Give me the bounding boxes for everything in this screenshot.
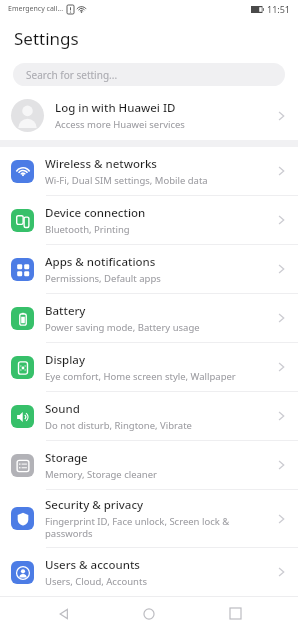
- staticText: Access more Huawei services: [55, 118, 185, 131]
- button[interactable]: Back: [42, 597, 86, 630]
- button[interactable]: Storage: [0, 441, 298, 489]
- staticText: Wireless & networks: [45, 156, 157, 172]
- staticText: Display: [45, 352, 85, 368]
- button[interactable]: Home: [127, 597, 171, 630]
- button[interactable]: Search for setting...: [13, 63, 285, 86]
- button[interactable]: Recent apps: [213, 597, 257, 630]
- staticText: Apps & notifications: [45, 254, 156, 270]
- staticText: Permissions, Default apps: [45, 272, 161, 285]
- staticText: Eye comfort, Home screen style, Wallpape…: [45, 370, 236, 383]
- staticText: Memory, Storage cleaner: [45, 468, 157, 481]
- button[interactable]: Log in with Huawei ID: [0, 91, 298, 140]
- button[interactable]: Device connection: [0, 196, 298, 244]
- staticText: Do not disturb, Ringtone, Vibrate: [45, 419, 192, 432]
- staticText: Security & privacy: [45, 497, 144, 513]
- staticText: Power saving mode, Battery usage: [45, 321, 200, 334]
- button[interactable]: Wireless & networks: [0, 147, 298, 195]
- button[interactable]: Sound: [0, 392, 298, 440]
- staticText: Emergency call...: [8, 4, 64, 14]
- staticText: Bluetooth, Printing: [45, 223, 130, 236]
- staticText: Storage: [45, 450, 88, 466]
- staticText: Sound: [45, 401, 80, 417]
- staticText: 11:51: [267, 3, 291, 15]
- button[interactable]: Apps & notifications: [0, 245, 298, 293]
- staticText: Device connection: [45, 205, 146, 221]
- staticText: Log in with Huawei ID: [55, 100, 176, 116]
- button[interactable]: Security & privacy: [0, 490, 298, 547]
- staticText: Users & accounts: [45, 557, 140, 573]
- button[interactable]: Users & accounts: [0, 548, 298, 596]
- button[interactable]: Display: [0, 343, 298, 391]
- button[interactable]: Battery: [0, 294, 298, 342]
- staticText: Users, Cloud, Accounts: [45, 575, 147, 588]
- staticText: Search for setting...: [26, 68, 118, 82]
- staticText: Settings: [14, 27, 79, 50]
- staticText: Fingerprint ID, Face unlock, Screen lock…: [45, 515, 269, 540]
- staticText: Wi-Fi, Dual SIM settings, Mobile data: [45, 174, 208, 187]
- staticText: Battery: [45, 303, 86, 319]
